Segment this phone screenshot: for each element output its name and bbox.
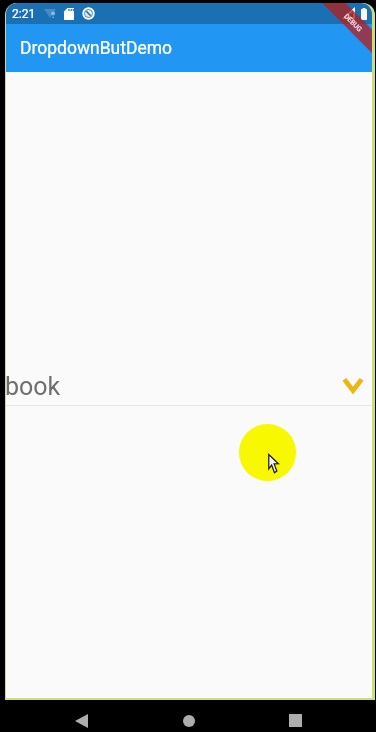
button[interactable]: Action: [239, 424, 296, 481]
button[interactable]: Back: [75, 714, 88, 728]
staticText: DropdownButDemo: [20, 38, 173, 59]
staticText: DEBUG: [342, 12, 364, 34]
staticText: 2:21: [12, 7, 36, 21]
staticText: book: [6, 372, 61, 401]
button[interactable]: Home: [183, 715, 195, 727]
button[interactable]: book: [6, 368, 372, 406]
